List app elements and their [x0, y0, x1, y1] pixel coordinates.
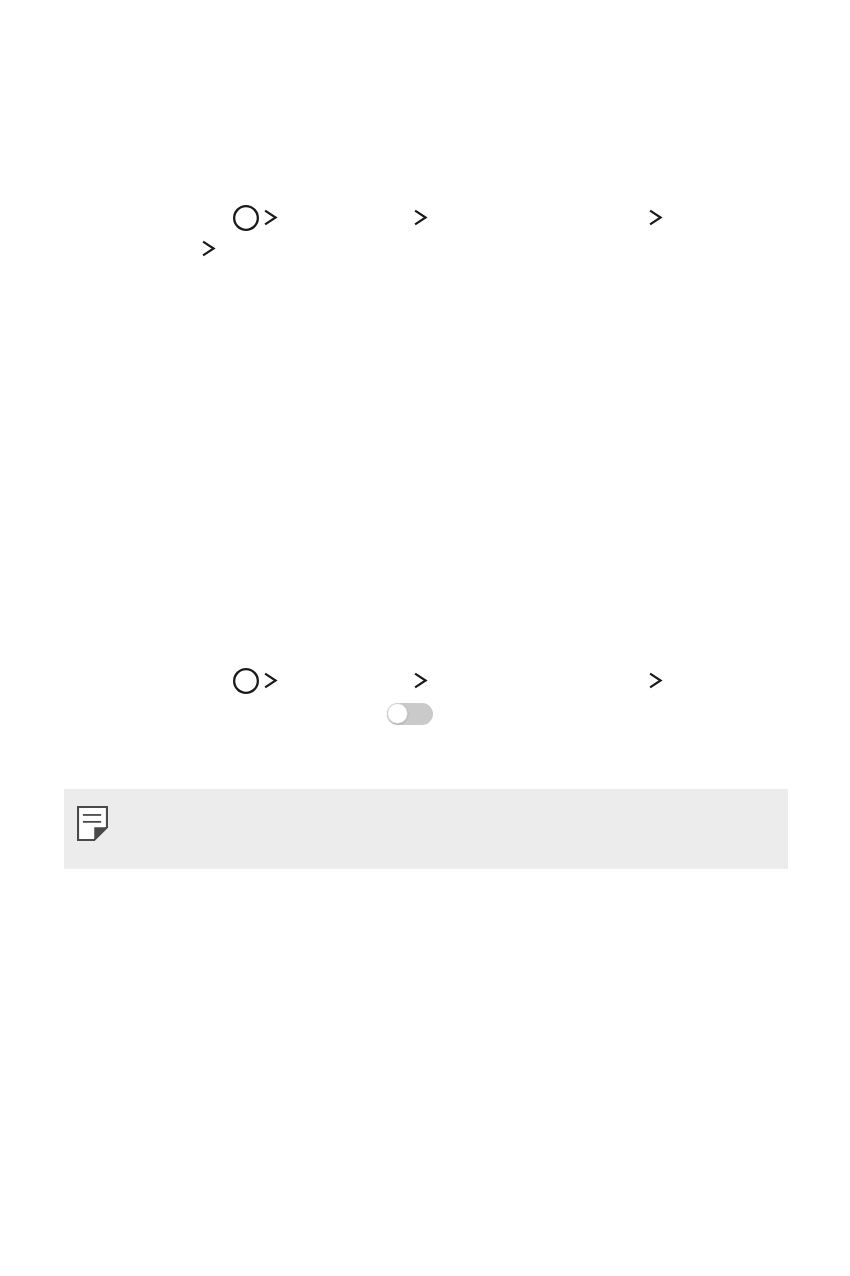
button[interactable]: Step two: find the app in the list — [180, 659, 680, 729]
button[interactable]: Step one: open the system settings path — [180, 196, 680, 266]
button[interactable]: Toggle permission switch, off — [386, 702, 434, 726]
button[interactable]: Note about this permission — [64, 789, 788, 869]
